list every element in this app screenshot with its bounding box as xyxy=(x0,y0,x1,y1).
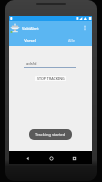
staticText: VaktAlert xyxy=(22,26,39,31)
button[interactable]: Varsel xyxy=(9,35,50,46)
button[interactable]: Recents xyxy=(68,152,80,164)
staticText: Alle xyxy=(68,38,75,43)
staticText: Tracking started xyxy=(35,132,66,137)
staticText: STOP TRACKING xyxy=(37,76,65,81)
button[interactable]: Back xyxy=(21,152,33,164)
button[interactable]: More options xyxy=(80,23,90,33)
staticText: Varsel xyxy=(24,38,36,43)
staticText: adsfd xyxy=(26,61,37,66)
button[interactable]: STOP TRACKING xyxy=(35,76,66,81)
button[interactable]: Home xyxy=(45,152,57,164)
button[interactable]: Alle xyxy=(50,35,92,46)
